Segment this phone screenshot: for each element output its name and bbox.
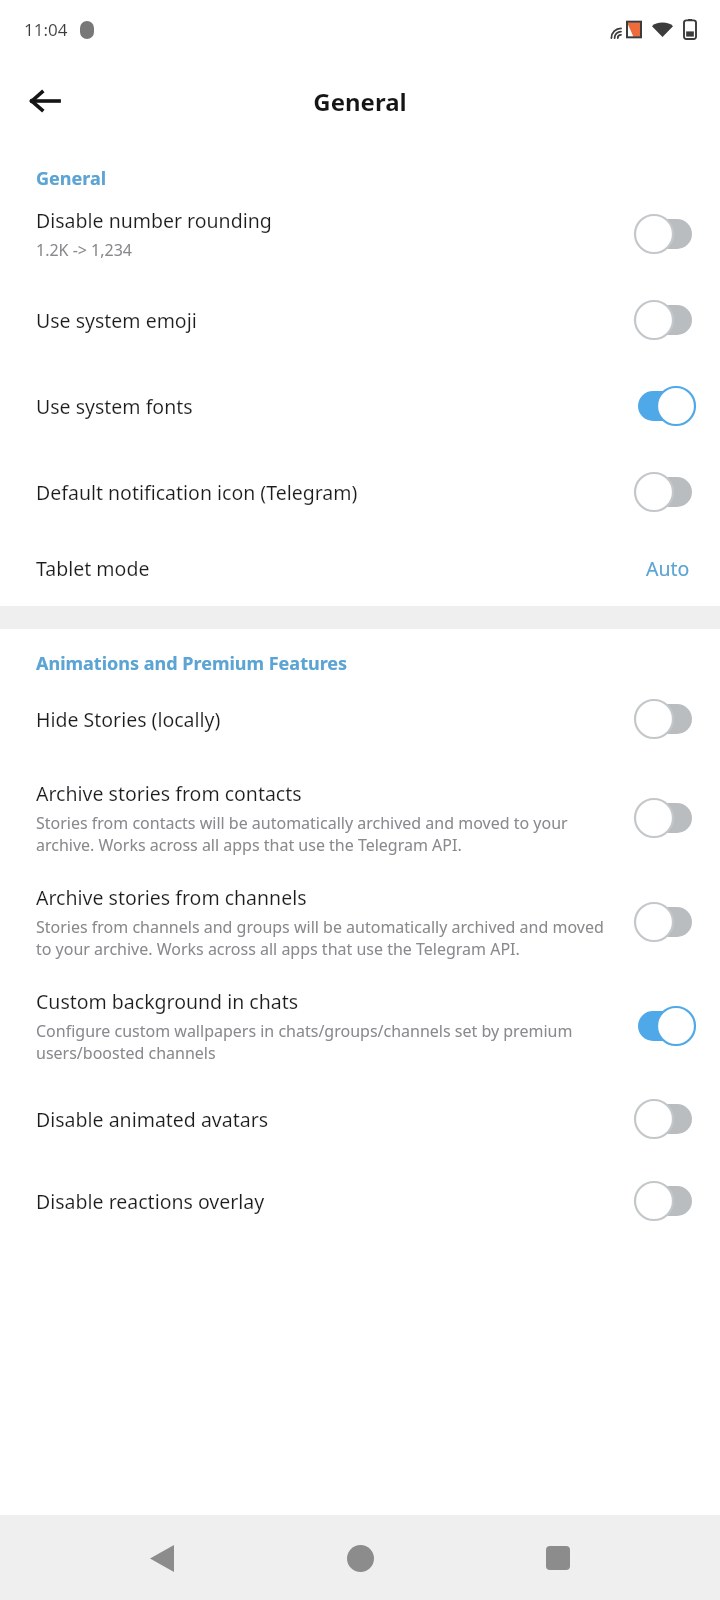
button[interactable]: Toggle on — [632, 383, 698, 429]
staticText: Configure custom wallpapers in chats/gro… — [36, 1020, 618, 1064]
button[interactable]: Hide Stories (locally) — [0, 682, 720, 762]
button[interactable]: Custom background in chats — [0, 974, 720, 1078]
staticText: Stories from contacts will be automatica… — [36, 812, 618, 856]
staticText: 11:04 — [24, 18, 68, 41]
button[interactable]: Toggle off — [632, 297, 698, 343]
staticText: Default notification icon (Telegram) — [36, 479, 358, 506]
staticText: Tablet mode — [36, 555, 150, 582]
button[interactable]: Recent apps — [522, 1522, 594, 1594]
staticText: Hide Stories (locally) — [36, 706, 221, 733]
staticText: Disable reactions overlay — [36, 1188, 265, 1215]
button[interactable]: Use system emoji — [0, 277, 720, 363]
button[interactable]: Back — [126, 1522, 198, 1594]
staticText: Use system fonts — [36, 393, 193, 420]
button[interactable]: Toggle off — [632, 795, 698, 841]
button[interactable]: Archive stories from channels — [0, 870, 720, 974]
staticText: Custom background in chats — [36, 988, 299, 1015]
button[interactable]: Toggle off — [632, 1178, 698, 1224]
button[interactable]: Disable animated avatars — [0, 1078, 720, 1160]
button[interactable]: Home — [324, 1522, 396, 1594]
staticText: Use system emoji — [36, 307, 197, 334]
staticText: General — [313, 85, 407, 118]
button[interactable]: Toggle off — [632, 211, 698, 257]
button[interactable]: Toggle off — [632, 899, 698, 945]
button[interactable]: Disable number rounding — [0, 197, 720, 277]
staticText: Disable animated avatars — [36, 1106, 269, 1133]
button[interactable]: Tablet mode — [0, 535, 720, 606]
staticText: General — [36, 166, 107, 191]
staticText: Archive stories from channels — [36, 884, 307, 911]
button[interactable]: Default notification icon (Telegram) — [0, 449, 720, 535]
button[interactable]: Disable reactions overlay — [0, 1160, 720, 1242]
staticText: Archive stories from contacts — [36, 780, 302, 807]
button[interactable]: Toggle off — [632, 696, 698, 742]
staticText: Disable number rounding — [36, 207, 272, 234]
button[interactable]: Toggle off — [632, 469, 698, 515]
button[interactable]: Archive stories from contacts — [0, 762, 720, 870]
button[interactable]: Toggle on — [632, 1003, 698, 1049]
button[interactable]: Back — [14, 70, 76, 132]
button[interactable]: Use system fonts — [0, 363, 720, 449]
staticText: Stories from channels and groups will be… — [36, 916, 618, 960]
staticText: Auto — [646, 555, 690, 582]
staticText: 1.2K -> 1,234 — [36, 239, 133, 261]
staticText: Animations and Premium Features — [36, 651, 348, 676]
button[interactable]: Toggle off — [632, 1096, 698, 1142]
